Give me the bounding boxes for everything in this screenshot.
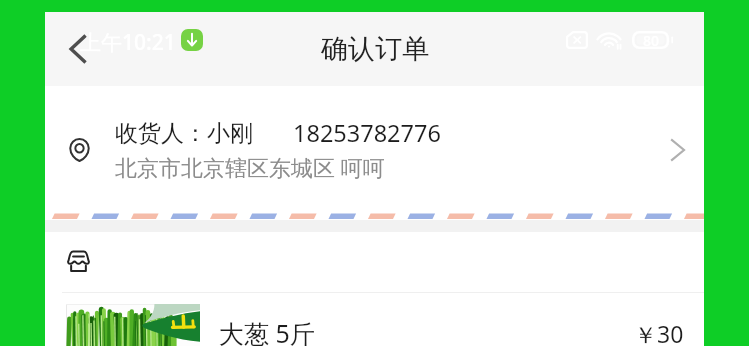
staticText: 大葱 5斤 [219, 316, 315, 346]
staticText: ￥30 [634, 318, 684, 346]
button[interactable]: 大葱 5斤 [45, 293, 704, 346]
button[interactable]: Back [53, 20, 101, 78]
staticText: 确认订单 [321, 32, 429, 66]
staticText: 80 [643, 31, 660, 49]
staticText: 收货人：小刚 [115, 119, 253, 148]
button[interactable]: Shop [45, 232, 704, 290]
button[interactable]: 收货人：小刚 [45, 86, 704, 213]
staticText: 北京市北京辖区东城区 呵呵 [115, 152, 385, 182]
staticText: 18253782776 [293, 117, 441, 149]
other: Shop [67, 250, 90, 272]
staticText: 上午10:21 [80, 28, 176, 57]
